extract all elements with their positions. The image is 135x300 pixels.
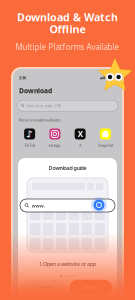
staticText: 2:36 [19, 75, 26, 80]
staticText: Download & Watch [17, 10, 118, 24]
staticText: Offline [49, 22, 85, 36]
staticText: 1.Open a website or app [39, 260, 96, 268]
staticText: Recommended websites [19, 117, 61, 122]
staticText: Snapchat [98, 142, 113, 148]
button[interactable]: Snapchat [93, 128, 118, 148]
staticText: ♪ [26, 129, 32, 139]
button[interactable]: X [67, 128, 93, 148]
staticText: Search or enter URL [26, 103, 61, 108]
staticText: ♪ [27, 129, 33, 139]
staticText: www. [31, 202, 44, 209]
button[interactable]: Instagr.. [42, 128, 67, 148]
staticText: Cancel [36, 284, 52, 291]
button[interactable]: Cancel [23, 280, 65, 295]
staticText: Download [19, 86, 52, 95]
button[interactable]: Next [69, 280, 112, 295]
staticText: Download guide [48, 164, 86, 172]
staticText: Instagr.. [48, 142, 61, 148]
staticText: TikTok [24, 142, 35, 148]
button[interactable]: ♪ [17, 128, 42, 148]
staticText: Multiple Platforms Available [15, 42, 119, 52]
staticText: X [78, 129, 83, 139]
staticText: Next [85, 284, 97, 291]
staticText: ♪ [27, 129, 33, 139]
staticText: X [79, 142, 81, 148]
